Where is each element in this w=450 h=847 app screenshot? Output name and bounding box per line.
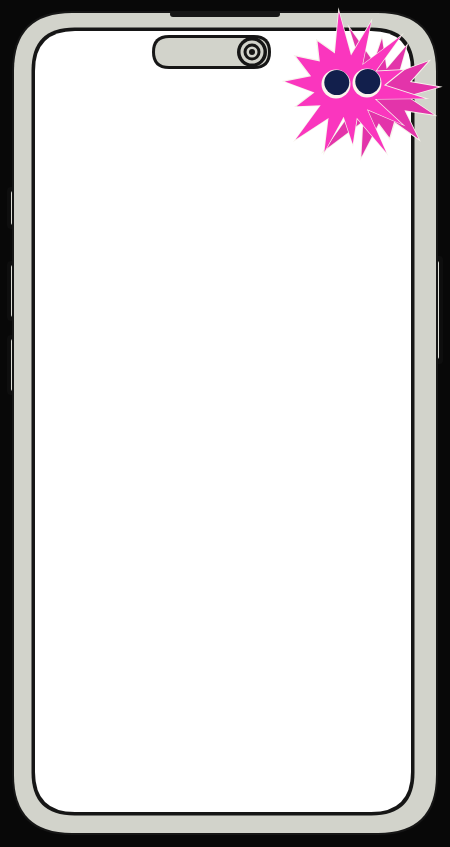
button[interactable]: Phone mockup with sticker [0,0,450,847]
